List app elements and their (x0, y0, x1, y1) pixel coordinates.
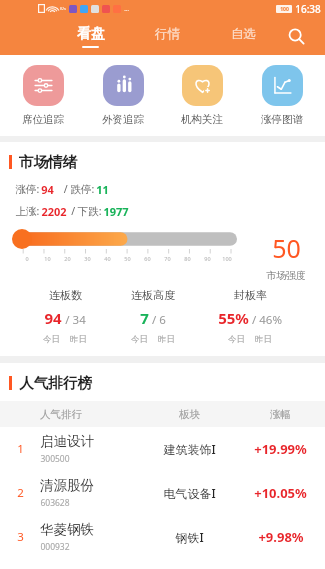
staticText: 电气设备I (163, 485, 216, 501)
staticText: 100 (222, 255, 232, 262)
button[interactable]: 看盘 (52, 17, 129, 55)
staticText: 94 (44, 308, 62, 328)
button[interactable]: 行情 (129, 17, 205, 55)
button[interactable]: 2 (0, 471, 325, 515)
staticText: / 6 (152, 312, 166, 328)
staticText: 3 (17, 529, 24, 545)
staticText: 60 (144, 255, 151, 262)
staticText: 16:38 (295, 2, 321, 16)
button[interactable]: 外资追踪 (87, 65, 159, 126)
staticText: 机构关注 (181, 113, 223, 126)
staticText: 300500 (40, 453, 70, 465)
button[interactable]: 3 (0, 515, 325, 559)
staticText: 90 (204, 255, 211, 262)
button[interactable]: 机构关注 (166, 65, 238, 126)
staticText: 看盘 (77, 25, 105, 43)
staticText: 上涨: (14, 204, 41, 218)
staticText: +9.98% (258, 528, 304, 546)
staticText: 80 (184, 255, 191, 262)
staticText: 今日 (43, 334, 60, 345)
staticText: 55% (218, 308, 249, 328)
staticText: 外资追踪 (102, 113, 144, 126)
staticText: 11 (96, 182, 109, 197)
staticText: 华菱钢铁 (40, 521, 94, 538)
staticText: 100 (280, 6, 289, 13)
staticText: 自选 (231, 26, 256, 42)
staticText: 000932 (40, 541, 70, 553)
staticText: 昨日 (158, 334, 175, 345)
staticText: 板块 (179, 408, 200, 421)
staticText: 1 (17, 441, 24, 457)
staticText: 启迪设计 (40, 433, 94, 450)
staticText: 涨停图谱 (261, 113, 303, 126)
staticText: 2 (17, 485, 24, 501)
button[interactable]: 自选 (205, 17, 281, 55)
staticText: 昨日 (70, 334, 87, 345)
staticText: / 46% (252, 312, 282, 328)
button[interactable]: 席位追踪 (7, 65, 79, 126)
staticText: / 下跌: (67, 204, 103, 218)
staticText: 清源股份 (40, 477, 94, 494)
staticText: 市场情绪 (19, 153, 77, 171)
staticText: 席位追踪 (22, 113, 64, 126)
staticText: 涨幅 (270, 408, 291, 421)
button[interactable]: 1 (0, 427, 325, 471)
staticText: 人气排行 (40, 408, 82, 421)
staticText: 50 (272, 231, 301, 265)
staticText: 7 (140, 308, 149, 328)
button[interactable]: 搜索 (281, 21, 311, 51)
staticText: 20 (64, 255, 71, 262)
staticText: 涨停: (14, 182, 41, 196)
staticText: 603628 (40, 497, 70, 509)
staticText: +19.99% (254, 440, 307, 458)
staticText: K/s (60, 6, 66, 11)
staticText: 市场强度 (266, 269, 306, 282)
staticText: 70 (164, 255, 171, 262)
staticText: 人气排行榜 (19, 374, 92, 392)
staticText: 10 (44, 255, 51, 262)
staticText: … (124, 5, 129, 13)
button[interactable]: 涨停图谱 (246, 65, 318, 126)
staticText: 连板数 (49, 288, 82, 302)
staticText: 30 (84, 255, 91, 262)
staticText: 50 (124, 255, 131, 262)
staticText: 1977 (103, 204, 129, 219)
staticText: 建筑装饰I (163, 441, 216, 457)
staticText: 0 (25, 255, 29, 262)
staticText: 今日 (131, 334, 148, 345)
staticText: 94 (41, 182, 54, 197)
staticText: / 跌停: (54, 182, 96, 196)
staticText: 封板率 (234, 288, 267, 302)
staticText: 2202 (41, 204, 67, 219)
staticText: 连板高度 (131, 288, 175, 302)
staticText: 今日 (228, 334, 245, 345)
staticText: +10.05% (254, 484, 307, 502)
staticText: 40 (104, 255, 111, 262)
staticText: 钢铁I (175, 529, 204, 545)
staticText: 昨日 (255, 334, 272, 345)
staticText: / 34 (65, 312, 86, 328)
staticText: 行情 (155, 26, 180, 42)
